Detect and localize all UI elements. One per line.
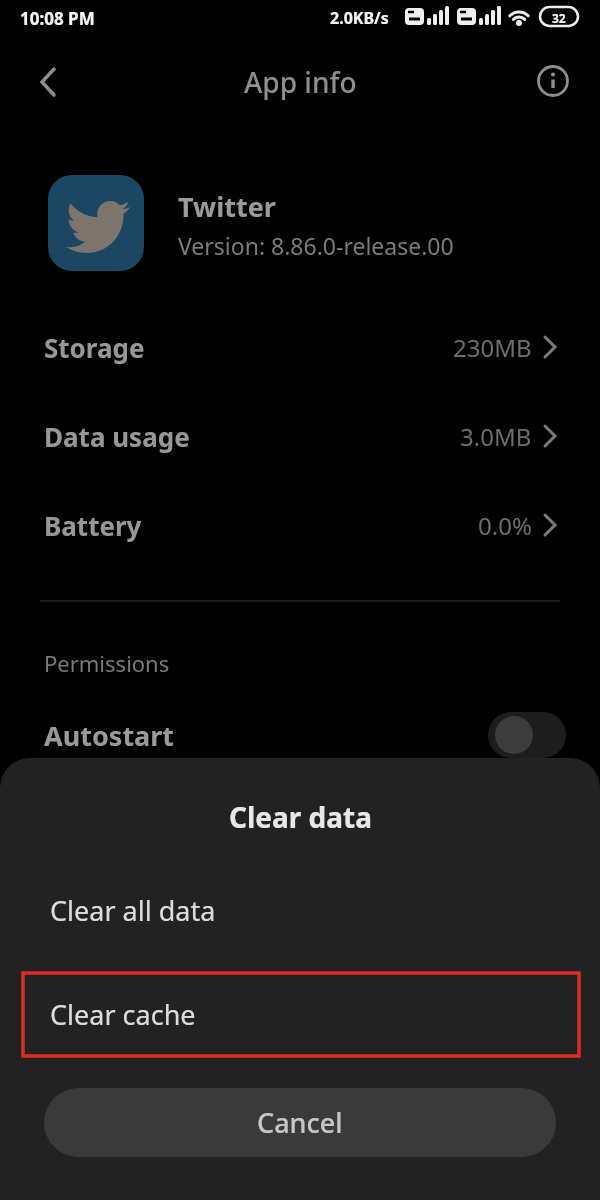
- staticText: Storage: [44, 330, 145, 365]
- staticText: 2.0KB/s: [330, 7, 389, 29]
- staticText: Twitter: [178, 188, 276, 222]
- button[interactable]: Cancel: [44, 1088, 556, 1157]
- button[interactable]: Clear cache: [50, 994, 450, 1034]
- staticText: Version: 8.86.0-release.00: [178, 230, 454, 260]
- staticText: 230MB: [453, 331, 532, 364]
- button[interactable]: [28, 62, 68, 102]
- staticText: 32: [552, 10, 566, 26]
- staticText: 0.0%: [478, 509, 532, 542]
- staticText: Clear cache: [50, 996, 196, 1033]
- button[interactable]: Storage: [0, 329, 600, 365]
- staticText: App info: [244, 63, 357, 101]
- button[interactable]: Clear all data: [50, 890, 450, 930]
- staticText: Autostart: [44, 717, 175, 754]
- button[interactable]: [533, 61, 573, 101]
- staticText: Battery: [44, 508, 142, 543]
- button[interactable]: Battery: [0, 507, 600, 543]
- staticText: Permissions: [44, 648, 170, 678]
- staticText: Data usage: [44, 419, 190, 454]
- staticText: Clear data: [229, 798, 372, 836]
- staticText: Clear all data: [50, 892, 216, 929]
- button[interactable]: [488, 712, 566, 758]
- staticText: 3.0MB: [460, 420, 532, 453]
- staticText: Cancel: [257, 1104, 343, 1141]
- staticText: 10:08 PM: [20, 7, 95, 30]
- button[interactable]: Data usage: [0, 418, 600, 454]
